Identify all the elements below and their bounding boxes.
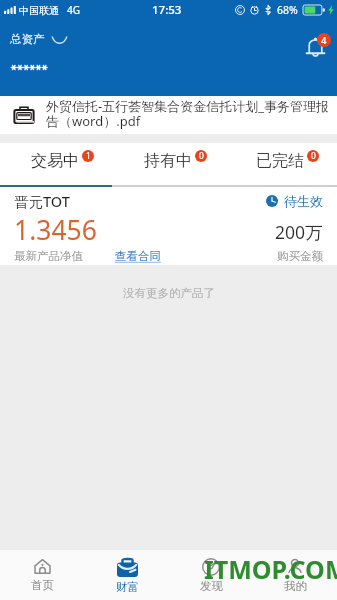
button[interactable]: 持有中 xyxy=(113,143,225,185)
staticText: 68% xyxy=(277,3,298,17)
staticText: 我的 xyxy=(284,579,307,593)
staticText: 交易中 xyxy=(31,151,79,171)
button[interactable]: 晋元TOT xyxy=(0,187,337,265)
staticText: 已完结 xyxy=(256,151,304,171)
button[interactable]: 已完结 xyxy=(225,143,337,185)
staticText: 0 xyxy=(199,150,204,162)
staticText: 1.3456 xyxy=(14,212,97,248)
staticText: 首页 xyxy=(31,578,54,592)
button[interactable]: 财富 xyxy=(85,550,169,600)
staticText: 0 xyxy=(311,150,316,162)
button[interactable]: 发现 xyxy=(169,550,253,600)
staticText: 晋元TOT xyxy=(14,191,70,211)
staticText: 购买金额 xyxy=(277,249,323,263)
staticText: 4G xyxy=(67,3,80,17)
staticText: ITMOP.COM xyxy=(204,552,337,586)
staticText: 中国联通 xyxy=(19,4,59,17)
staticText: 发现 xyxy=(200,579,223,593)
button[interactable]: 总资产 xyxy=(10,32,67,46)
button[interactable]: 交易中 xyxy=(0,143,113,185)
staticText: 200万 xyxy=(275,220,323,244)
staticText: 财富 xyxy=(116,580,139,594)
staticText: 1 xyxy=(86,150,91,162)
staticText: 没有更多的产品了 xyxy=(123,286,215,300)
button[interactable]: 外贸信托-五行荟智集合资金信托计划_事务管理报告（word）.pdf xyxy=(0,96,337,134)
staticText: 总资产 xyxy=(10,32,45,46)
button[interactable]: 我的 xyxy=(253,550,337,600)
button[interactable]: Notifications xyxy=(301,31,333,63)
staticText: 待生效 xyxy=(284,193,323,209)
staticText: 4 xyxy=(321,34,327,47)
staticText: 外贸信托-五行荟智集合资金信托计划_事务管理报告（word）.pdf xyxy=(46,97,335,130)
staticText: 17:53 xyxy=(152,2,182,18)
button[interactable]: 首页 xyxy=(0,550,85,600)
staticText: 最新产品净值 xyxy=(14,249,83,263)
staticText: 查看合同 xyxy=(115,249,161,263)
staticText: 持有中 xyxy=(144,151,192,171)
button[interactable]: 查看合同 xyxy=(115,249,161,263)
